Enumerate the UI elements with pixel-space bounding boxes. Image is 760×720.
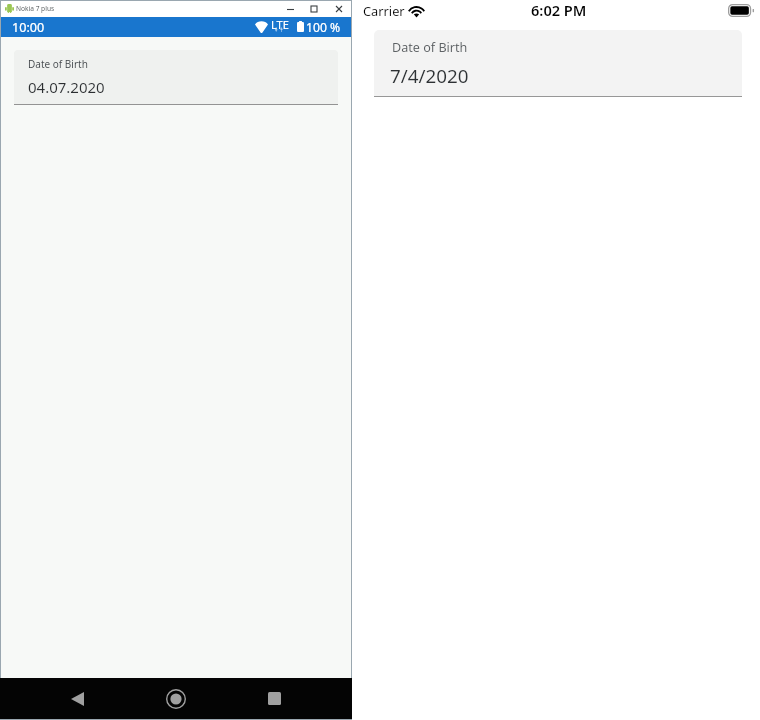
staticText: 7/4/2020 — [390, 63, 469, 89]
staticText: Date of Birth — [28, 57, 88, 71]
button[interactable]: Back — [57, 678, 97, 719]
staticText: Carrier — [363, 2, 405, 19]
button[interactable]: Date of Birth — [374, 30, 742, 97]
staticText: 10:00 — [12, 19, 45, 36]
button[interactable]: Home — [156, 678, 196, 719]
button[interactable]: Maximize — [302, 1, 326, 17]
button[interactable]: Recents — [254, 678, 294, 719]
staticText: 6:02 PM — [531, 0, 587, 20]
button[interactable]: Date of Birth — [14, 50, 338, 105]
staticText: 04.07.2020 — [28, 77, 105, 97]
staticText: Date of Birth — [392, 39, 468, 56]
staticText: Nokia 7 plus — [16, 4, 55, 13]
staticText: 100 % — [306, 19, 341, 36]
staticText: LTE — [271, 17, 289, 32]
button[interactable]: Minimize — [278, 1, 302, 17]
button[interactable]: Close — [327, 1, 351, 17]
